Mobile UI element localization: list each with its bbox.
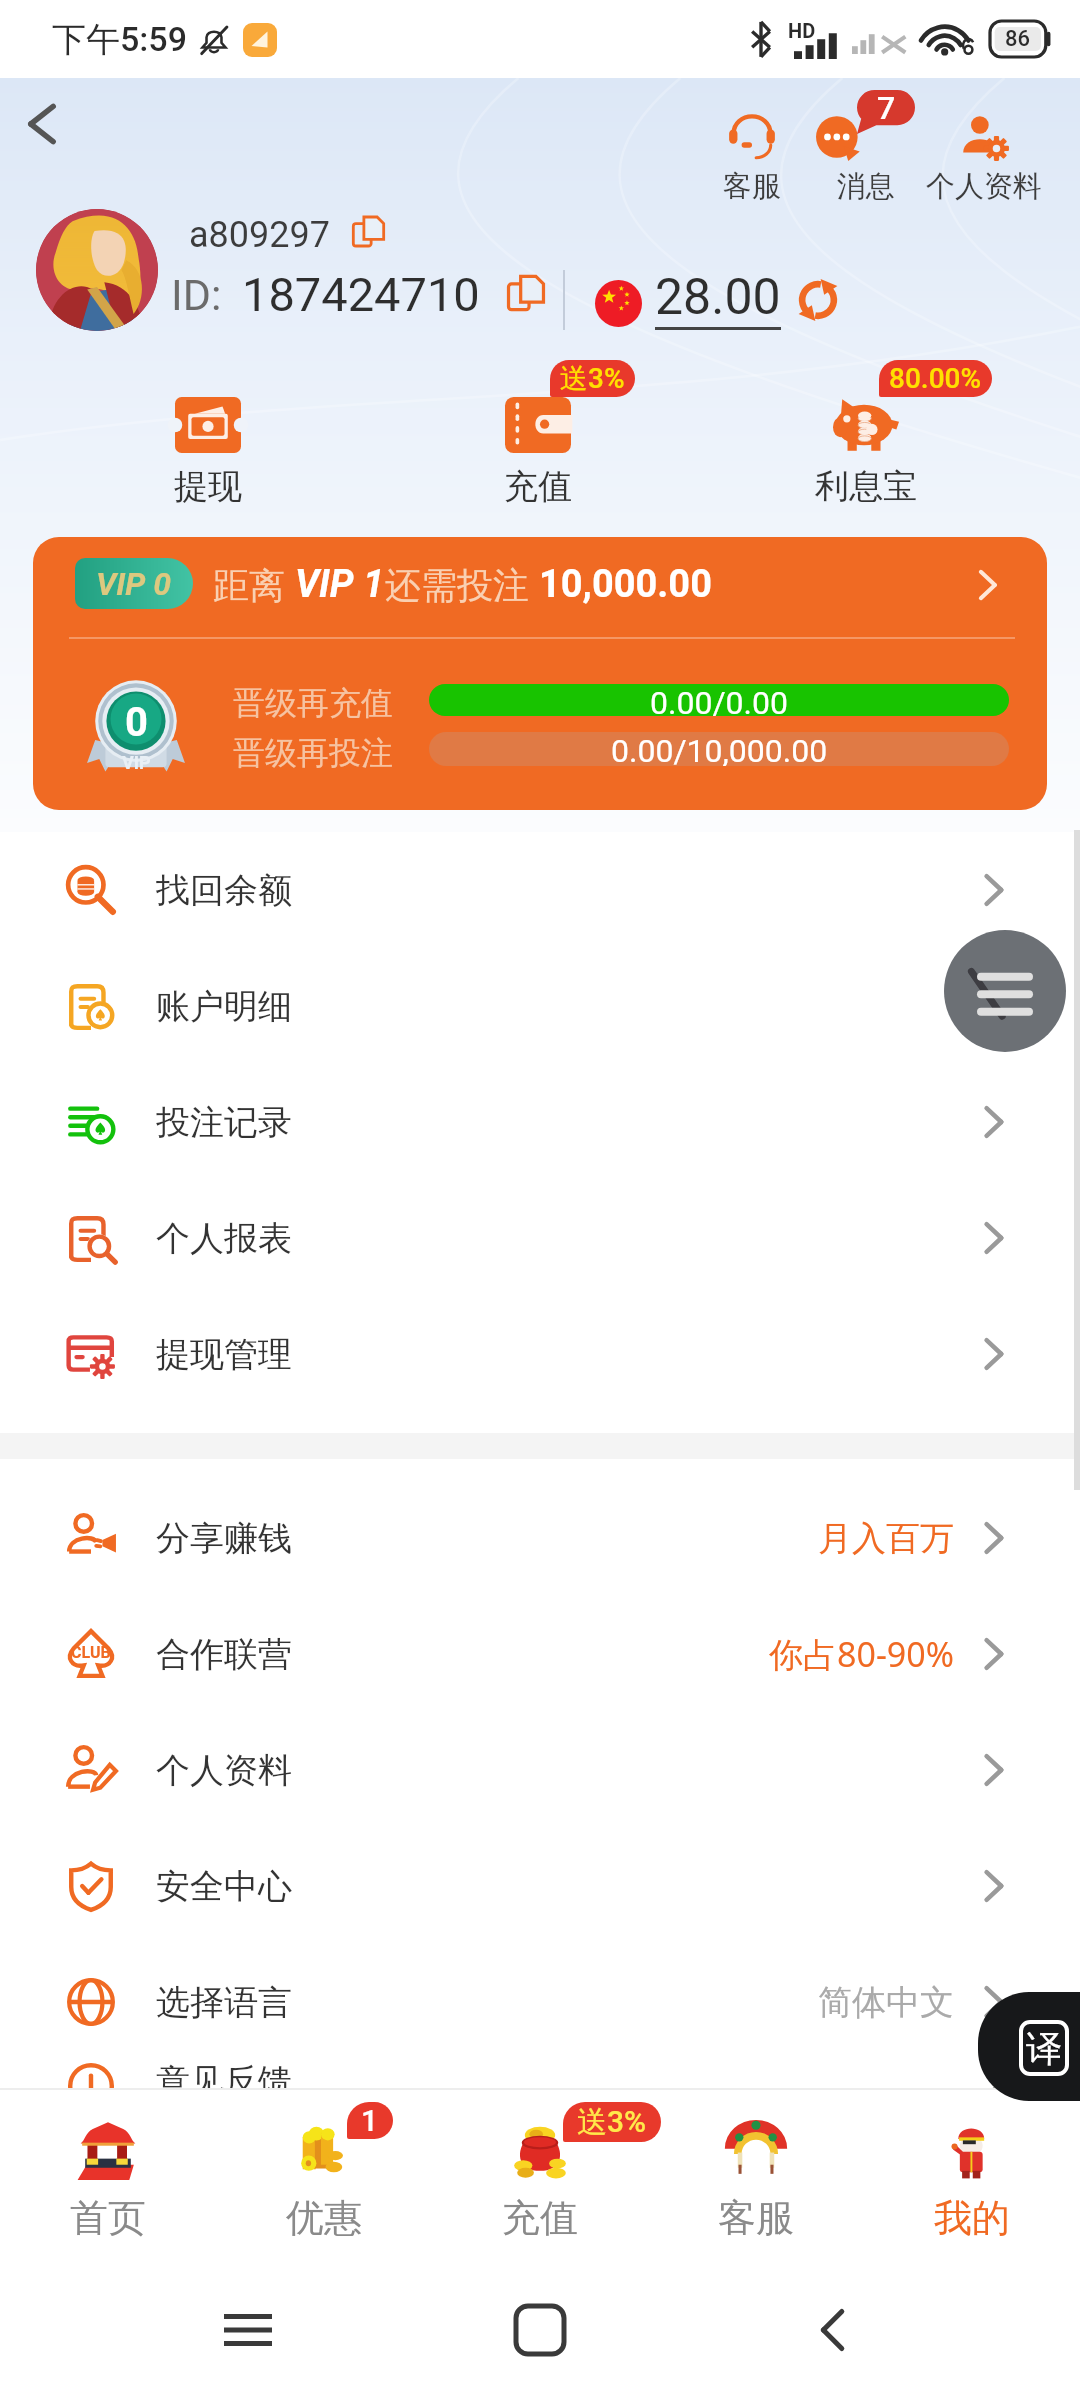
staticText: 账户明细: [156, 985, 292, 1028]
staticText: 优惠: [286, 2194, 362, 2242]
staticText: VIP 0: [96, 565, 172, 603]
staticText: 晋级再充值: [233, 683, 393, 723]
staticText: VIP 1: [295, 562, 385, 607]
staticText: a809297: [189, 214, 330, 256]
button[interactable]: 我的: [864, 2090, 1080, 2260]
button[interactable]: 分享赚钱: [0, 1480, 1080, 1596]
button[interactable]: 首页: [0, 2090, 216, 2260]
staticText: 0.00/10,000.00: [611, 732, 828, 766]
button[interactable]: 找回余额: [0, 832, 1080, 948]
button[interactable]: 个人报表: [0, 1180, 1080, 1296]
staticText: VIP: [122, 752, 151, 773]
button[interactable]: 账户明细: [0, 948, 1080, 1064]
staticText: 86: [1005, 26, 1031, 52]
button[interactable]: Quick menu: [944, 930, 1066, 1052]
button[interactable]: VIP 0: [33, 537, 1047, 810]
staticText: ID:: [171, 270, 222, 320]
staticText: 0.00/0.00: [650, 684, 788, 716]
staticText: 个人报表: [156, 1217, 292, 1260]
button[interactable]: Copy username: [348, 215, 388, 255]
staticText: 80.00%: [889, 362, 982, 395]
staticText: 分享赚钱: [156, 1517, 292, 1560]
staticText: CLUB: [71, 1643, 111, 1662]
staticText: 你占80-90%: [769, 1631, 954, 1677]
button[interactable]: 个人资料: [0, 1712, 1080, 1828]
button[interactable]: Back: [788, 2285, 878, 2375]
staticText: 月入百万: [818, 1517, 954, 1560]
staticText: 我的: [934, 2194, 1010, 2242]
button[interactable]: 安全中心: [0, 1828, 1080, 1944]
staticText: 选择语言: [156, 1981, 292, 2024]
staticText: 28.00: [655, 268, 781, 327]
button[interactable]: 选择语言: [0, 1944, 1080, 2060]
staticText: 下午5:59: [52, 18, 187, 61]
staticText: 找回余额: [156, 869, 292, 912]
staticText: 投注记录: [156, 1101, 292, 1144]
button[interactable]: 送3%: [432, 2090, 648, 2260]
button[interactable]: Refresh balance: [794, 276, 842, 324]
button[interactable]: 28.00: [655, 268, 787, 330]
staticText: 提现: [174, 465, 242, 508]
button[interactable]: 意见反馈: [0, 2060, 1080, 2090]
button[interactable]: Home: [495, 2285, 585, 2375]
staticText: 距离: [213, 560, 295, 609]
staticText: 充值: [502, 2194, 578, 2242]
staticText: 个人资料: [926, 168, 1042, 205]
button[interactable]: 7: [776, 112, 956, 205]
staticText: 送3%: [577, 2103, 647, 2141]
staticText: 首页: [70, 2194, 146, 2242]
staticText: 消息: [837, 168, 895, 205]
button[interactable]: Translate: [978, 1992, 1080, 2101]
staticText: 送3%: [560, 361, 625, 396]
button[interactable]: Copy ID: [504, 273, 548, 317]
staticText: 0: [125, 699, 148, 746]
button[interactable]: 提现管理: [0, 1296, 1080, 1412]
button[interactable]: Recents: [203, 2285, 293, 2375]
staticText: 1: [361, 2103, 379, 2138]
button[interactable]: 个人资料: [894, 112, 1074, 205]
staticText: 安全中心: [156, 1865, 292, 1908]
staticText: 简体中文: [818, 1981, 954, 2024]
button[interactable]: 客服: [648, 2090, 864, 2260]
button[interactable]: Avatar: [36, 209, 158, 331]
staticText: 10,000.00: [539, 562, 712, 607]
button[interactable]: 1: [216, 2090, 432, 2260]
staticText: 187424710: [242, 267, 480, 322]
button[interactable]: Back: [0, 82, 84, 166]
staticText: 客服: [718, 2194, 794, 2242]
staticText: 译: [1026, 2026, 1062, 2071]
staticText: 充值: [504, 465, 572, 508]
staticText: 还需投注: [385, 560, 539, 609]
button[interactable]: 80.00%: [756, 389, 976, 508]
staticText: 客服: [723, 168, 781, 205]
staticText: 个人资料: [156, 1749, 292, 1792]
button[interactable]: CLUB: [0, 1596, 1080, 1712]
staticText: 7: [877, 89, 896, 127]
button[interactable]: 投注记录: [0, 1064, 1080, 1180]
button[interactable]: 提现: [98, 389, 318, 508]
staticText: 合作联营: [156, 1633, 292, 1676]
button[interactable]: 客服: [662, 112, 842, 205]
staticText: 意见反馈: [156, 2060, 292, 2090]
staticText: 利息宝: [815, 465, 917, 508]
staticText: 提现管理: [156, 1333, 292, 1376]
button[interactable]: 送3%: [428, 389, 648, 508]
staticText: HD: [788, 19, 816, 42]
staticText: 晋级再投注: [233, 733, 393, 773]
